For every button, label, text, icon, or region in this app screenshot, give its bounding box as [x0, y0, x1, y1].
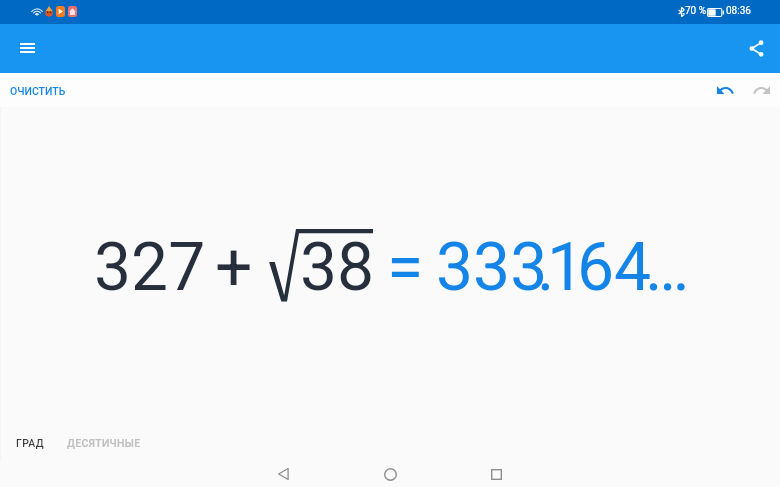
staticText: .	[537, 229, 555, 306]
button[interactable]: ГРАД	[6, 431, 54, 455]
button[interactable]: Share	[738, 30, 774, 66]
staticText: ГРАД	[16, 437, 44, 449]
staticText: 08:36	[726, 5, 751, 17]
button[interactable]: ОЧИСТИТЬ	[0, 79, 76, 103]
staticText: 64	[577, 229, 652, 306]
staticText: 327	[94, 229, 206, 306]
staticText: …	[645, 229, 690, 306]
staticText: ОЧИСТИТЬ	[10, 85, 66, 97]
other: Square root	[266, 226, 374, 304]
staticText: 1	[547, 229, 585, 306]
button[interactable]: Recents	[464, 461, 528, 487]
staticText: =	[387, 229, 424, 306]
button[interactable]: Menu	[9, 30, 45, 66]
button[interactable]: Back	[251, 461, 315, 487]
staticText: +	[215, 229, 253, 306]
button[interactable]: Home	[358, 461, 422, 487]
staticText: 38	[300, 229, 375, 306]
staticText: 70 %	[685, 5, 707, 17]
button[interactable]: Undo	[709, 74, 741, 106]
staticText: ДЕСЯТИЧНЫЕ	[67, 437, 141, 449]
button[interactable]: ДЕСЯТИЧНЫЕ	[57, 431, 151, 455]
button[interactable]: Redo	[746, 74, 778, 106]
staticText: 333	[436, 229, 548, 306]
